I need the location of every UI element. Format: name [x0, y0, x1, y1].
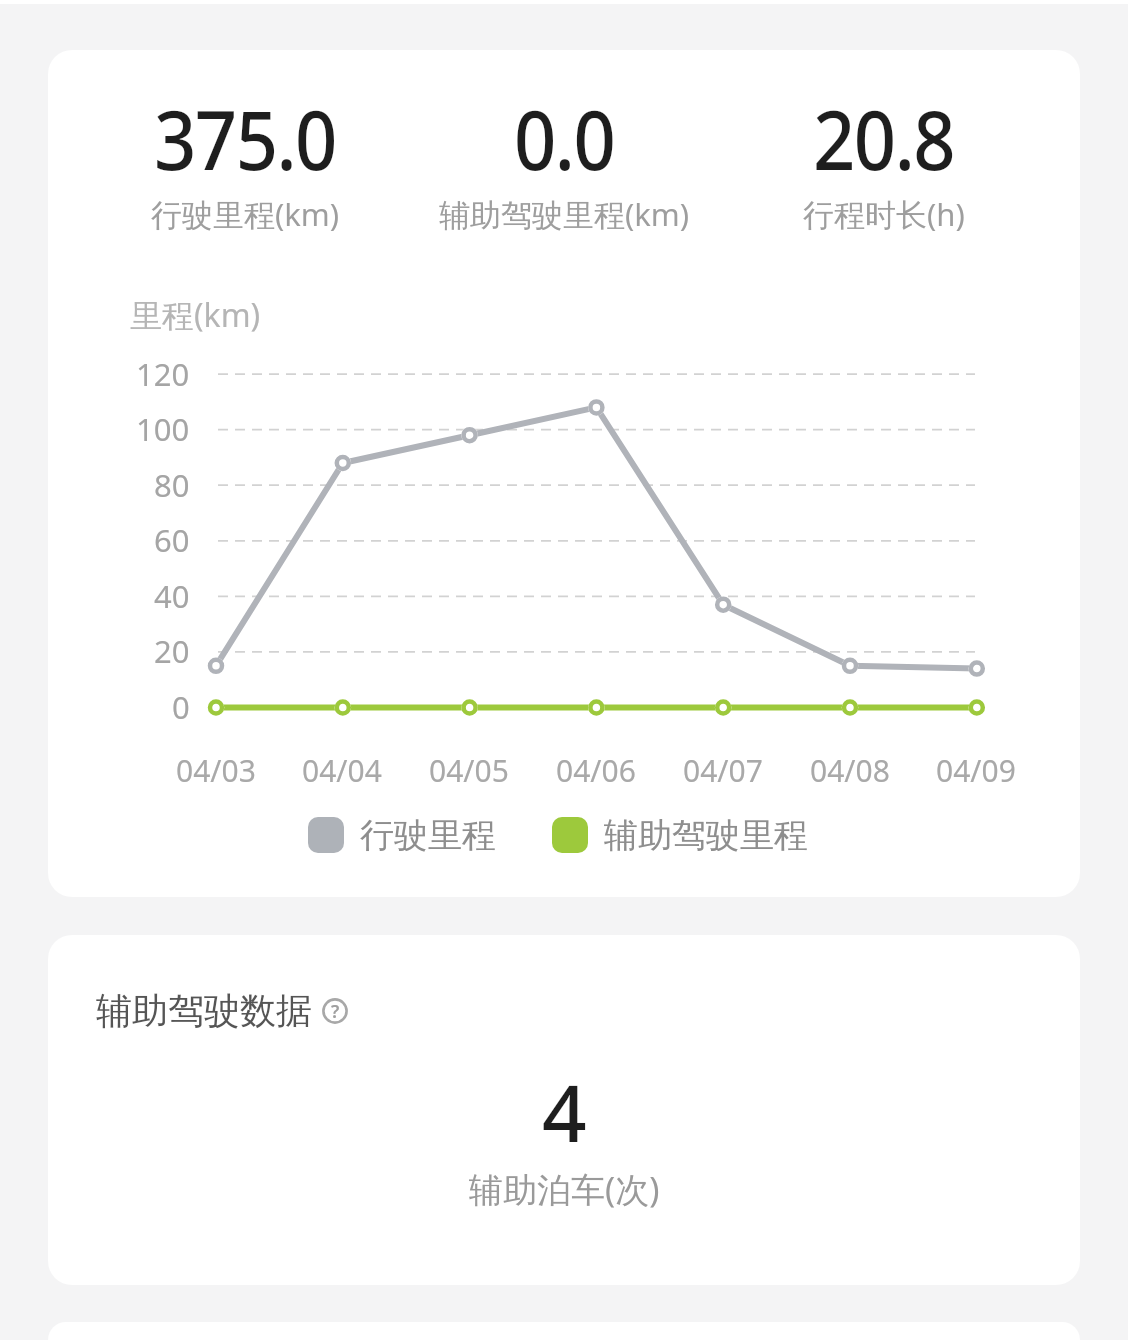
- staticText: 04/09: [936, 750, 1016, 791]
- button[interactable]: [308, 817, 344, 853]
- staticText: 里程(km): [130, 293, 261, 337]
- staticText: 辅助泊车(次): [469, 1166, 660, 1212]
- button[interactable]: ?: [317, 993, 353, 1029]
- staticText: 0.0: [514, 83, 615, 194]
- staticText: 20.8: [813, 83, 955, 194]
- staticText: 100: [136, 408, 190, 450]
- staticText: 04/05: [429, 750, 509, 791]
- button[interactable]: 0.0: [405, 88, 724, 235]
- staticText: 04/07: [683, 750, 763, 791]
- staticText: 04/06: [556, 750, 636, 791]
- staticText: 行驶里程(km): [151, 193, 340, 235]
- button[interactable]: [552, 817, 588, 853]
- staticText: ?: [331, 999, 340, 1024]
- staticText: 120: [136, 353, 190, 395]
- staticText: 40: [154, 575, 190, 617]
- staticText: 60: [154, 519, 190, 561]
- staticText: 行驶里程: [360, 814, 496, 857]
- staticText: 80: [154, 464, 190, 506]
- staticText: 行程时长(h): [803, 193, 965, 235]
- button[interactable]: 375.0: [85, 88, 405, 235]
- staticText: 04/03: [176, 750, 256, 791]
- staticText: 0: [172, 686, 190, 728]
- staticText: 辅助驾驶里程(km): [439, 193, 690, 235]
- button[interactable]: 20.8: [724, 88, 1043, 235]
- staticText: 辅助驾驶数据: [96, 988, 312, 1033]
- staticText: 辅助驾驶里程: [604, 814, 808, 857]
- staticText: 375.0: [154, 83, 336, 194]
- staticText: 04/08: [810, 750, 890, 791]
- staticText: 20: [154, 630, 190, 672]
- staticText: 04/04: [302, 750, 382, 791]
- staticText: 4: [542, 1059, 587, 1159]
